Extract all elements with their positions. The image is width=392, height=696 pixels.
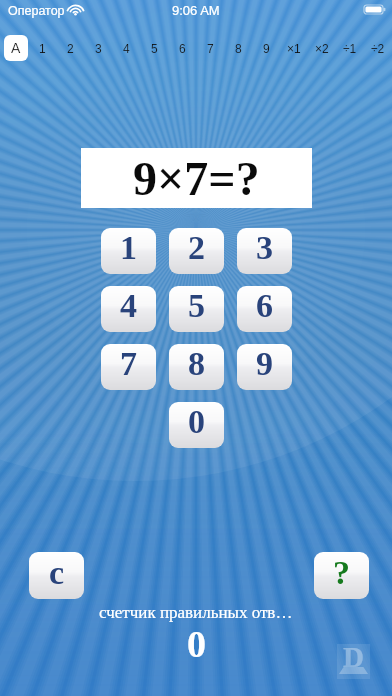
- staticText: 2: [188, 229, 205, 267]
- staticText: 8: [235, 42, 242, 55]
- button[interactable]: 4: [112, 35, 140, 61]
- staticText: ×2: [315, 42, 329, 55]
- staticText: 6: [179, 42, 186, 55]
- staticText: ×1: [287, 42, 301, 55]
- staticText: 1: [39, 42, 46, 55]
- button[interactable]: c: [29, 552, 84, 599]
- staticText: 1: [120, 229, 137, 267]
- staticText: 2: [67, 42, 74, 55]
- staticText: счетчик правильных отв…: [99, 603, 293, 622]
- staticText: Оператор: [8, 4, 65, 18]
- staticText: D: [343, 641, 364, 673]
- staticText: A: [11, 40, 21, 56]
- button[interactable]: ÷2: [364, 35, 392, 61]
- button[interactable]: ×1: [280, 35, 308, 61]
- staticText: 0: [188, 403, 205, 441]
- staticText: 9: [256, 345, 273, 383]
- staticText: ÷1: [343, 42, 357, 55]
- button[interactable]: 3: [237, 228, 292, 274]
- staticText: 7: [120, 345, 137, 383]
- button[interactable]: 5: [140, 35, 168, 61]
- button[interactable]: 0: [169, 402, 224, 448]
- button[interactable]: ?: [314, 552, 369, 599]
- staticText: 9:06 AM: [172, 3, 220, 18]
- button[interactable]: 8: [224, 35, 252, 61]
- staticText: 3: [95, 42, 102, 55]
- button[interactable]: 6: [237, 286, 292, 332]
- staticText: 9×7=?: [133, 152, 260, 205]
- staticText: ?: [333, 554, 350, 592]
- staticText: 5: [151, 42, 158, 55]
- staticText: 0: [187, 623, 206, 665]
- staticText: 4: [123, 42, 130, 55]
- button[interactable]: 2: [169, 228, 224, 274]
- other: Developer logo: [337, 644, 370, 679]
- button[interactable]: 4: [101, 286, 156, 332]
- staticText: 5: [188, 287, 205, 325]
- staticText: 6: [256, 287, 273, 325]
- button[interactable]: 1: [28, 35, 56, 61]
- button[interactable]: 3: [84, 35, 112, 61]
- button[interactable]: ×2: [308, 35, 336, 61]
- button[interactable]: 9: [252, 35, 280, 61]
- button[interactable]: 7: [101, 344, 156, 390]
- button[interactable]: 1: [101, 228, 156, 274]
- button[interactable]: 2: [56, 35, 84, 61]
- staticText: 3: [256, 229, 273, 267]
- button[interactable]: 7: [196, 35, 224, 61]
- button[interactable]: 5: [169, 286, 224, 332]
- staticText: 8: [188, 345, 205, 383]
- button[interactable]: A: [4, 35, 28, 61]
- staticText: 9: [263, 42, 270, 55]
- staticText: 4: [120, 287, 137, 325]
- staticText: ÷2: [371, 42, 385, 55]
- staticText: c: [49, 554, 65, 592]
- button[interactable]: ÷1: [336, 35, 364, 61]
- button[interactable]: 9: [237, 344, 292, 390]
- button[interactable]: 8: [169, 344, 224, 390]
- staticText: 7: [207, 42, 214, 55]
- button[interactable]: 6: [168, 35, 196, 61]
